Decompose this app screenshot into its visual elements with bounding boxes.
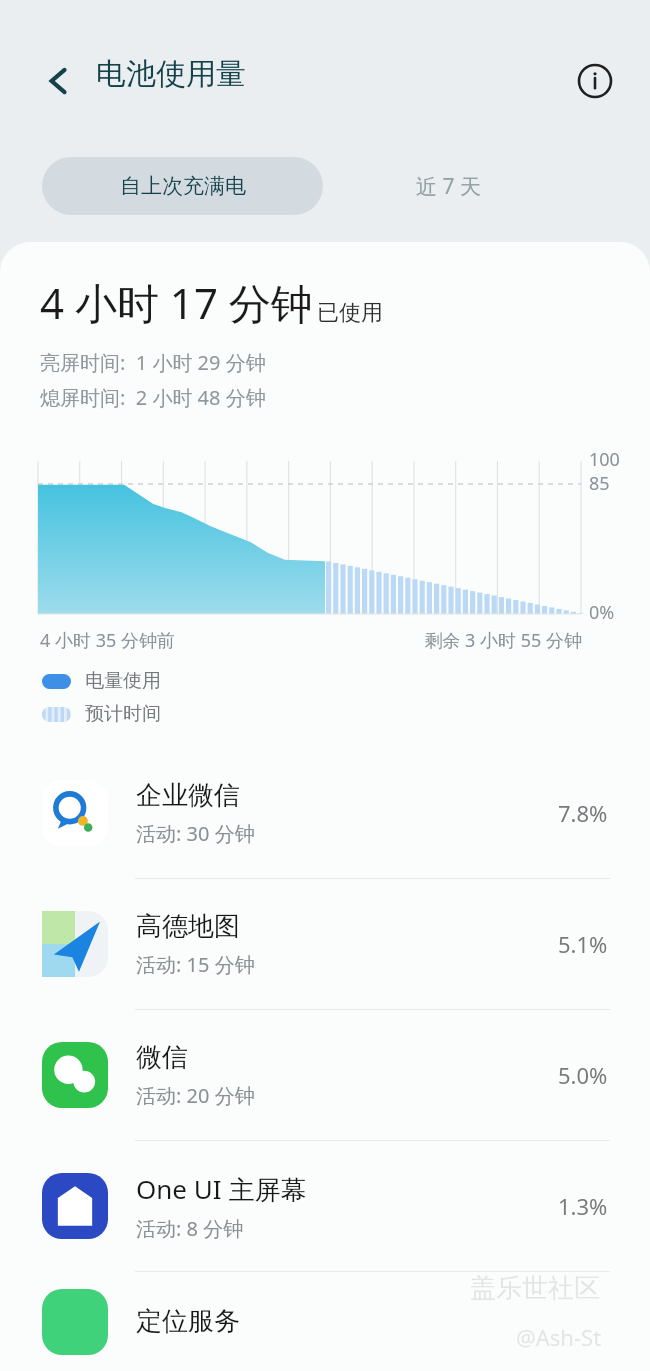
staticText: 活动: 15 分钟	[136, 951, 255, 978]
staticText: 已使用	[317, 299, 383, 327]
staticText: 熄屏时间: 2 小时 48 分钟	[40, 384, 266, 411]
button[interactable]: 近 7 天	[323, 157, 573, 215]
staticText: 活动: 20 分钟	[136, 1082, 255, 1109]
button[interactable]: 企业微信	[0, 748, 650, 878]
button[interactable]: 返回	[36, 58, 82, 104]
button[interactable]: 定位服务	[0, 1272, 650, 1371]
staticText: 定位服务	[136, 1305, 240, 1338]
staticText: 企业微信	[136, 779, 240, 812]
button[interactable]: 高德地图	[0, 879, 650, 1009]
staticText: 盖乐世社区	[470, 1272, 600, 1305]
button[interactable]: 微信	[0, 1010, 650, 1140]
staticText: 电量使用	[85, 669, 161, 693]
staticText: 85	[589, 471, 610, 496]
staticText: 剩余 3 小时 55 分钟	[424, 628, 582, 653]
staticText: 近 7 天	[416, 172, 481, 201]
staticText: 100	[589, 447, 620, 472]
staticText: 电池使用量	[96, 55, 246, 93]
staticText: 活动: 8 分钟	[136, 1215, 244, 1242]
button[interactable]: One UI 主屏幕	[0, 1141, 650, 1271]
button[interactable]: 自上次充满电	[42, 157, 323, 215]
staticText: 5.1%	[558, 929, 608, 959]
staticText: 4 小时 35 分钟前	[40, 628, 175, 653]
staticText: 预计时间	[85, 702, 161, 726]
staticText: 高德地图	[136, 910, 240, 943]
staticText: 微信	[136, 1041, 188, 1074]
staticText: 4 小时 17 分钟	[40, 274, 313, 331]
staticText: 5.0%	[558, 1060, 608, 1090]
staticText: 1.3%	[558, 1191, 608, 1221]
staticText: 活动: 30 分钟	[136, 820, 255, 847]
staticText: One UI 主屏幕	[136, 1171, 307, 1207]
staticText: 自上次充满电	[120, 173, 246, 199]
staticText: 0%	[589, 600, 615, 625]
button[interactable]: 信息	[573, 59, 617, 103]
staticText: 7.8%	[558, 798, 608, 828]
staticText: @Ash-St	[516, 1322, 602, 1352]
staticText: 亮屏时间: 1 小时 29 分钟	[40, 349, 266, 376]
